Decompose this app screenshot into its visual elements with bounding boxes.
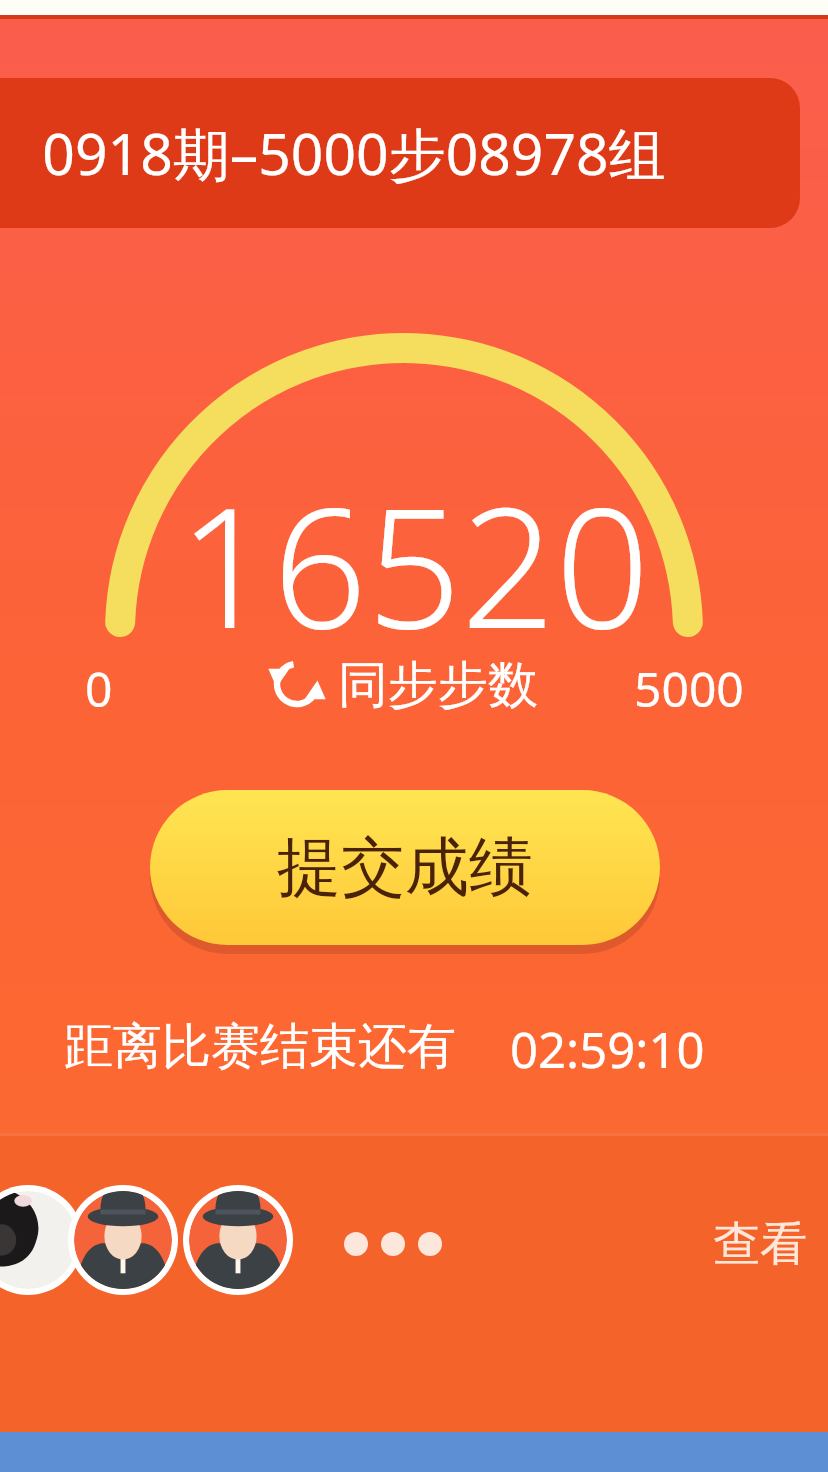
staticText: 5000 [634,656,744,721]
staticText: 距离比赛结束还有 [64,1016,456,1078]
staticText: 16520 [178,452,650,642]
staticText: 0918期–5000步08978组 [42,114,666,192]
staticText: 02:59:10 [510,1016,705,1083]
staticText: 同步步数 [338,654,538,717]
button[interactable]: 0918期–5000步08978组 [0,78,768,228]
staticText: 0 [85,656,113,721]
staticText: 查看小 [713,1215,828,1274]
button[interactable]: 查看小 [700,1198,828,1290]
button[interactable]: 提交成绩 [150,790,660,945]
button[interactable]: 同步步数 [268,650,538,720]
staticText: 提交成绩 [277,827,533,908]
